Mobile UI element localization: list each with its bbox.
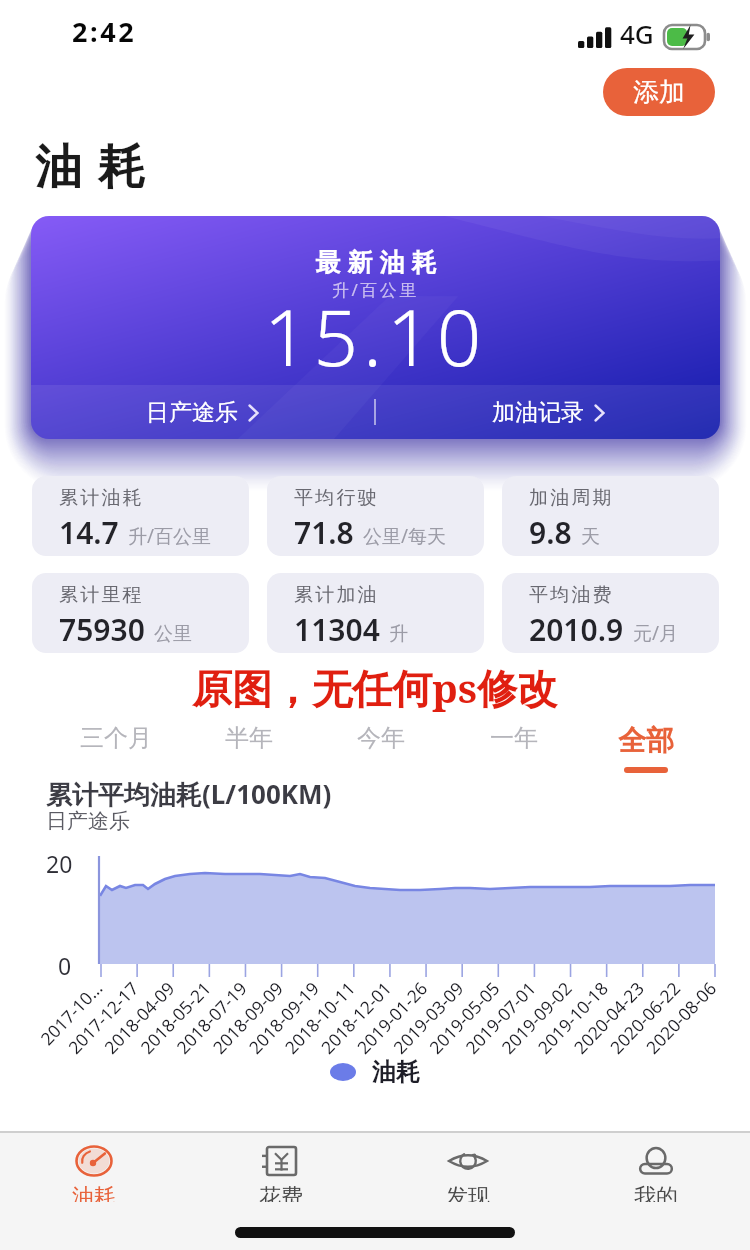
button[interactable]: 我的 [562,1133,750,1218]
staticText: 日产途乐 [46,808,130,834]
staticText: 升 [389,622,408,646]
staticText: 71.8 [294,512,354,553]
staticText: 添加 [633,76,685,109]
staticText: 油耗 [27,138,153,197]
staticText: 公里/每天 [363,523,447,549]
button[interactable]: 半年 [195,720,303,756]
staticText: 0 [58,950,72,981]
staticText: 11304 [294,609,380,650]
staticText: 油耗 [372,1057,420,1087]
button[interactable]: 三个月 [62,720,170,756]
staticText: 元/月 [633,620,679,646]
button[interactable]: 添加 [603,68,715,116]
staticText: 最新油耗 [312,247,440,278]
other: 发现 [447,1148,489,1174]
staticText: 75930 [59,609,145,650]
staticText: 公里 [154,622,192,646]
staticText: 花费 [259,1183,303,1202]
staticText: 发现 [446,1183,490,1202]
button[interactable]: 油耗 [0,1133,187,1218]
staticText: 15.10 [264,283,487,389]
button[interactable]: 加油周期 [502,476,719,556]
other: 花费 [262,1145,300,1177]
staticText: 累计加油 [294,583,379,607]
button[interactable]: 全部 [592,720,700,776]
staticText: 日产途乐 [146,398,238,427]
button[interactable]: 发现 [374,1133,562,1218]
staticText: 平均油费 [529,583,614,607]
staticText: 原图，无任何ps修改 [192,660,558,715]
staticText: 9.8 [529,512,572,553]
staticText: 我的 [634,1183,678,1202]
staticText: 累计油耗 [59,486,144,510]
button[interactable]: 累计油耗 [32,476,249,556]
button[interactable]: 平均油费 [502,573,719,653]
staticText: 20 [46,848,73,879]
staticText: 三个月 [80,723,152,753]
other: 油耗 [75,1145,113,1177]
staticText: 升/百公里 [332,278,419,301]
staticText: 累计平均油耗(L/100KM) [46,776,332,812]
staticText: 全部 [618,723,674,758]
button[interactable]: 花费 [187,1133,374,1218]
staticText: 累计里程 [59,583,144,607]
button[interactable]: 最新油耗 [31,216,720,439]
other: 我的 [638,1146,674,1176]
staticText: 今年 [357,723,405,753]
staticText: 一年 [490,723,538,753]
button[interactable]: 一年 [460,720,568,756]
button[interactable]: 加油记录 [376,385,720,439]
staticText: 加油记录 [492,398,584,427]
staticText: 2010.9 [529,609,624,650]
button[interactable]: 日产途乐 [31,385,374,439]
staticText: 平均行驶 [294,486,379,510]
button[interactable]: 累计加油 [267,573,484,653]
button[interactable]: 平均行驶 [267,476,484,556]
staticText: 2:42 [72,13,137,50]
staticText: 半年 [225,723,273,753]
button[interactable]: 累计里程 [32,573,249,653]
staticText: 加油周期 [529,486,614,510]
staticText: 油耗 [72,1183,116,1202]
staticText: 14.7 [59,512,119,553]
button[interactable]: 今年 [327,720,435,756]
staticText: 4G [620,16,654,51]
staticText: 天 [581,525,600,549]
staticText: 升/百公里 [128,523,212,549]
